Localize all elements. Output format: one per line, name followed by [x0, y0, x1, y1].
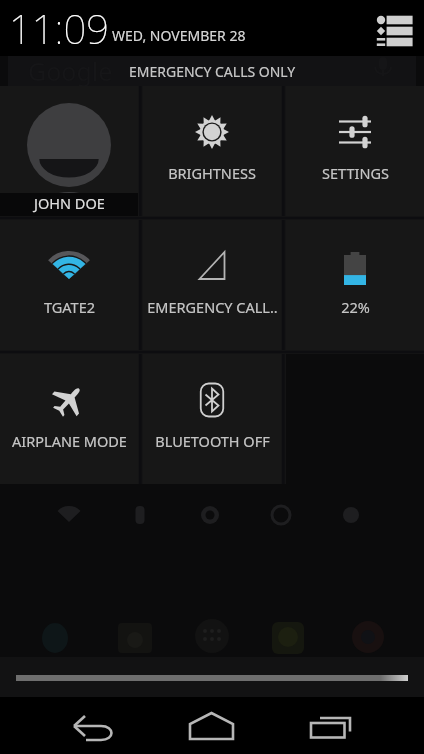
button[interactable]: BRIGHTNESS — [143, 86, 281, 216]
staticText: Google — [28, 54, 113, 88]
button[interactable]: Recent apps — [300, 703, 368, 748]
staticText: SETTINGS — [322, 163, 389, 183]
button[interactable]: AIRPLANE MODE — [0, 354, 138, 484]
button[interactable]: SETTINGS — [286, 86, 424, 216]
staticText: 11:09 — [9, 1, 109, 55]
staticText: AIRPLANE MODE — [12, 431, 127, 451]
staticText: WED, NOVEMBER 28 — [112, 26, 246, 45]
staticText: 22% — [341, 297, 370, 317]
button[interactable]: 22% — [286, 220, 424, 350]
button[interactable]: TGATE2 — [0, 220, 138, 350]
button[interactable]: BLUETOOTH OFF — [143, 354, 281, 484]
button[interactable]: Home — [178, 703, 246, 748]
staticText: BLUETOOTH OFF — [155, 431, 270, 451]
staticText: EMERGENCY CALL.. — [147, 297, 278, 317]
button[interactable]: JOHN DOE — [0, 86, 138, 216]
button[interactable]: Quick settings — [371, 7, 419, 55]
staticText: TGATE2 — [44, 297, 95, 317]
button[interactable]: EMERGENCY CALL.. — [143, 220, 281, 350]
button[interactable]: Back — [60, 703, 128, 748]
staticText: JOHN DOE — [34, 193, 105, 213]
staticText: BRIGHTNESS — [168, 163, 256, 183]
staticText: EMERGENCY CALLS ONLY — [129, 62, 296, 81]
